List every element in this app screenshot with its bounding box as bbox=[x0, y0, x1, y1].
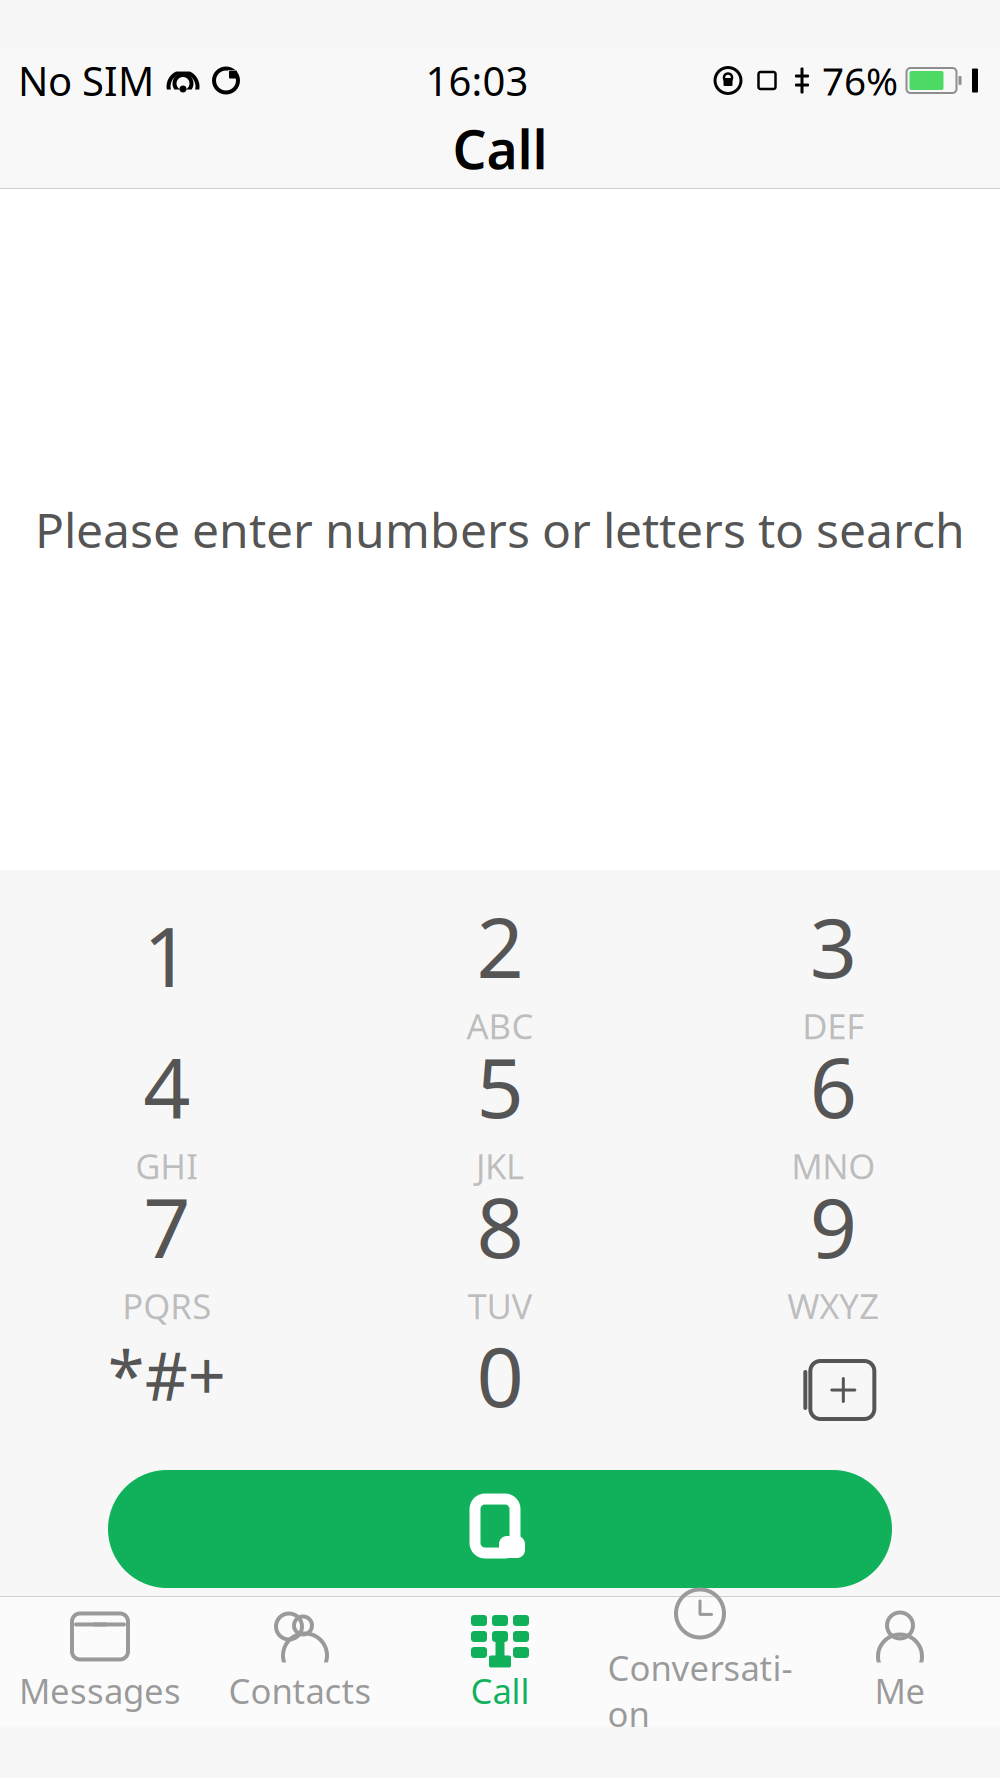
button[interactable]: 9 bbox=[667, 1180, 1000, 1320]
staticText: GHI bbox=[135, 1143, 198, 1189]
button[interactable]: 6 bbox=[667, 1040, 1000, 1180]
button[interactable]: 4 bbox=[0, 1040, 333, 1180]
staticText: Call bbox=[470, 1667, 529, 1713]
staticText: 8 bbox=[476, 1171, 523, 1281]
button[interactable]: 5 bbox=[333, 1040, 667, 1180]
staticText: 1 bbox=[143, 900, 190, 1010]
staticText: 16:03 bbox=[425, 54, 528, 107]
staticText: ABC bbox=[466, 1003, 533, 1049]
button[interactable]: *#+ bbox=[0, 1320, 333, 1460]
staticText: *#+ bbox=[108, 1331, 226, 1419]
staticText: 5 bbox=[476, 1031, 523, 1141]
staticText: MNO bbox=[791, 1143, 875, 1189]
staticText: Me bbox=[874, 1667, 925, 1713]
staticText: 76% bbox=[822, 55, 898, 106]
button[interactable]: 7 bbox=[0, 1180, 333, 1320]
button[interactable]: Delete bbox=[667, 1320, 1000, 1460]
staticText: 7 bbox=[143, 1171, 190, 1281]
staticText: TUV bbox=[467, 1283, 532, 1329]
button[interactable]: 1 bbox=[0, 900, 333, 1040]
staticText: 2 bbox=[476, 891, 523, 1001]
button[interactable]: Call bbox=[108, 1470, 892, 1588]
staticText: PQRS bbox=[122, 1283, 211, 1329]
button[interactable]: Call bbox=[400, 1601, 600, 1721]
button[interactable]: Me bbox=[800, 1601, 1000, 1721]
staticText: 0 bbox=[476, 1320, 523, 1430]
staticText: WXYZ bbox=[787, 1283, 879, 1329]
button[interactable]: 8 bbox=[333, 1180, 667, 1320]
staticText: Please enter numbers or letters to searc… bbox=[35, 498, 965, 561]
button[interactable]: 2 bbox=[333, 900, 667, 1040]
staticText: DEF bbox=[802, 1003, 864, 1049]
button[interactable]: 3 bbox=[667, 900, 1000, 1040]
staticText: 4 bbox=[143, 1031, 190, 1141]
staticText: No SIM bbox=[18, 54, 154, 107]
staticText: 3 bbox=[810, 891, 857, 1001]
staticText: JKL bbox=[476, 1143, 524, 1189]
staticText: Messages bbox=[19, 1667, 181, 1713]
staticText: Call bbox=[452, 113, 547, 184]
button[interactable]: 0 bbox=[333, 1320, 667, 1460]
staticText: 6 bbox=[810, 1031, 857, 1141]
button[interactable]: Conversation bbox=[600, 1601, 800, 1721]
staticText: Contacts bbox=[228, 1667, 371, 1713]
button[interactable]: Messages bbox=[0, 1601, 200, 1721]
staticText: 9 bbox=[810, 1171, 857, 1281]
button[interactable]: Contacts bbox=[200, 1601, 400, 1721]
staticText: Conversation bbox=[607, 1644, 792, 1737]
